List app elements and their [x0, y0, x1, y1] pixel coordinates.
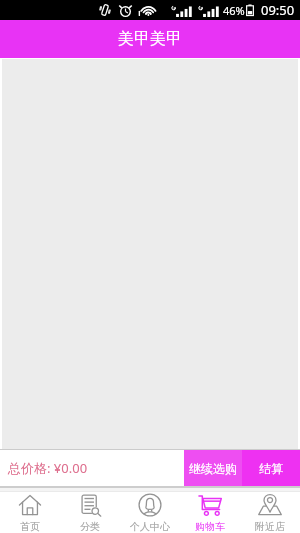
staticText: 结算 [259, 461, 283, 476]
button[interactable]: 继续选购 [184, 450, 242, 486]
staticText: 46% [223, 3, 245, 18]
staticText: 总价格: ¥0.00 [8, 459, 88, 477]
button[interactable]: Home [0, 492, 60, 533]
button[interactable]: Profile [120, 492, 180, 533]
staticText: 首页 [20, 520, 40, 533]
staticText: 09:50 [261, 1, 295, 19]
staticText: 继续选购 [189, 461, 237, 476]
staticText: 购物车 [195, 520, 225, 533]
button[interactable]: Shopping cart [180, 492, 240, 533]
staticText: 个人中心 [130, 520, 170, 533]
staticText: 美甲美甲 [118, 29, 182, 49]
staticText: 分类 [80, 520, 100, 533]
staticText: 附近店 [255, 520, 285, 533]
button[interactable]: Nearby stores [240, 492, 300, 533]
button[interactable]: Categories [60, 492, 120, 533]
button[interactable]: 结算 [242, 450, 300, 486]
